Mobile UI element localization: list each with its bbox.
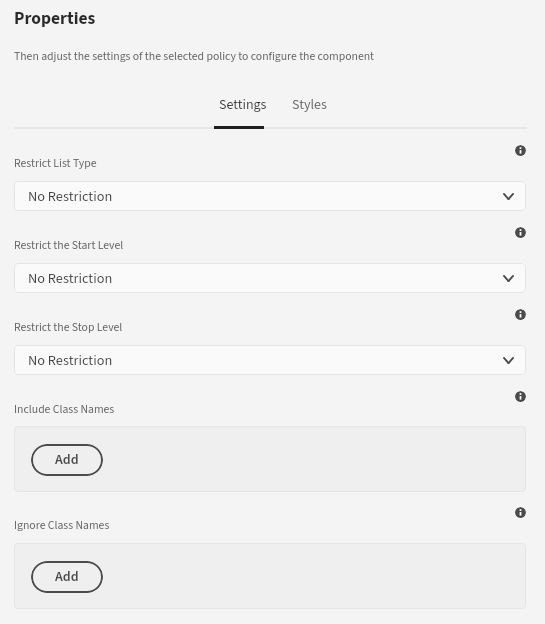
staticText: Add	[55, 450, 79, 470]
staticText: Then adjust the settings of the selected…	[14, 48, 375, 65]
staticText: Settings	[219, 95, 267, 115]
button[interactable]: Settings	[218, 95, 268, 128]
staticText: No Restriction	[28, 350, 113, 370]
staticText: Restrict the Start Level	[14, 237, 124, 254]
staticText: No Restriction	[28, 268, 113, 288]
button[interactable]: More information	[515, 391, 526, 402]
button[interactable]: More information	[515, 227, 526, 238]
staticText: Add	[55, 567, 79, 587]
button[interactable]: More information	[515, 145, 526, 156]
staticText: Restrict the Stop Level	[14, 319, 123, 336]
staticText: Include Class Names	[14, 401, 115, 418]
button[interactable]: More information	[515, 309, 526, 320]
staticText: Restrict List Type	[14, 155, 97, 172]
button[interactable]: No Restriction	[14, 263, 526, 293]
staticText: No Restriction	[28, 186, 113, 206]
button[interactable]: No Restriction	[14, 181, 526, 211]
staticText: Properties	[14, 6, 96, 31]
button[interactable]: Styles	[292, 95, 327, 128]
button[interactable]: No Restriction	[14, 345, 526, 375]
staticText: Ignore Class Names	[14, 517, 110, 534]
staticText: Styles	[292, 95, 327, 115]
button[interactable]: More information	[515, 507, 526, 518]
button[interactable]: Add	[31, 444, 103, 476]
button[interactable]: Add	[31, 561, 103, 593]
